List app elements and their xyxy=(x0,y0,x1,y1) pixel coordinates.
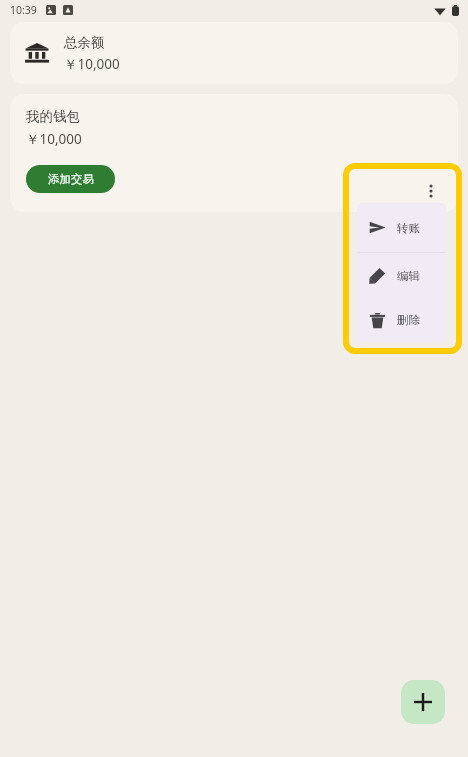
button[interactable]: 我的钱包 xyxy=(10,94,458,212)
button[interactable]: 转账 xyxy=(357,203,446,252)
staticText: 转账 xyxy=(397,221,420,235)
button[interactable]: 总余额 xyxy=(10,22,458,84)
staticText: 添加交易 xyxy=(48,172,94,186)
button[interactable]: 添加交易 xyxy=(26,165,115,193)
button[interactable]: Add xyxy=(401,680,445,724)
staticText: ￥10,000 xyxy=(26,130,82,148)
staticText: 删除 xyxy=(397,313,420,327)
staticText: 我的钱包 xyxy=(26,108,80,125)
staticText: 10:39 xyxy=(10,3,37,17)
button[interactable]: 删除 xyxy=(357,298,446,342)
button[interactable]: More options xyxy=(414,174,448,208)
staticText: ￥10,000 xyxy=(64,55,120,73)
button[interactable]: 编辑 xyxy=(357,253,446,298)
staticText: 总余额 xyxy=(64,34,105,51)
staticText: 编辑 xyxy=(397,269,420,283)
